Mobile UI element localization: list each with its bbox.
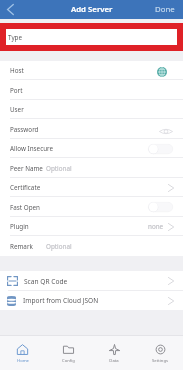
button[interactable]: Certificate <box>0 178 183 197</box>
staticText: Remark <box>10 242 33 251</box>
button[interactable]: Toggle <box>148 202 173 212</box>
button[interactable]: Home <box>0 336 45 370</box>
staticText: Password <box>10 125 39 134</box>
button[interactable]: Scan QR Code <box>0 271 183 291</box>
staticText: Fast Open <box>10 203 40 212</box>
button[interactable]: Plugin <box>0 217 183 236</box>
staticText: Host <box>10 66 24 75</box>
staticText: Done <box>155 4 175 15</box>
button[interactable]: User <box>0 100 183 119</box>
button[interactable]: Type <box>6 29 177 45</box>
staticText: Type <box>8 33 23 42</box>
staticText: Allow Insecure <box>10 144 54 153</box>
staticText: Scan QR Code <box>24 277 68 286</box>
button[interactable]: Remark <box>0 236 183 256</box>
button[interactable]: Settings <box>137 336 183 370</box>
staticText: Add Server <box>71 4 113 15</box>
button[interactable]: Import from Cloud JSON <box>0 291 183 310</box>
staticText: Peer Name <box>10 164 43 173</box>
staticText: Certificate <box>10 183 41 192</box>
staticText: Optional <box>46 164 72 173</box>
button[interactable]: Allow Insecure <box>0 139 183 158</box>
staticText: Settings <box>152 358 168 364</box>
button[interactable]: Back <box>0 0 20 19</box>
staticText: Home <box>17 358 29 364</box>
staticText: none <box>148 222 164 231</box>
staticText: Import from Cloud JSON <box>23 296 99 305</box>
staticText: Data <box>109 358 119 364</box>
button[interactable]: Port <box>0 80 183 100</box>
button[interactable]: Peer Name <box>0 158 183 178</box>
staticText: Plugin <box>10 222 29 231</box>
button[interactable]: Host <box>0 61 183 80</box>
button[interactable]: Config <box>45 336 91 370</box>
button[interactable]: Fast Open <box>0 197 183 217</box>
staticText: Port <box>10 86 23 95</box>
staticText: Optional <box>46 242 72 251</box>
button[interactable]: Toggle <box>148 144 173 154</box>
button[interactable]: Done <box>147 0 183 19</box>
staticText: Config <box>62 358 75 364</box>
staticText: User <box>10 105 24 114</box>
button[interactable]: Password <box>0 119 183 139</box>
button[interactable]: Data <box>91 336 137 370</box>
